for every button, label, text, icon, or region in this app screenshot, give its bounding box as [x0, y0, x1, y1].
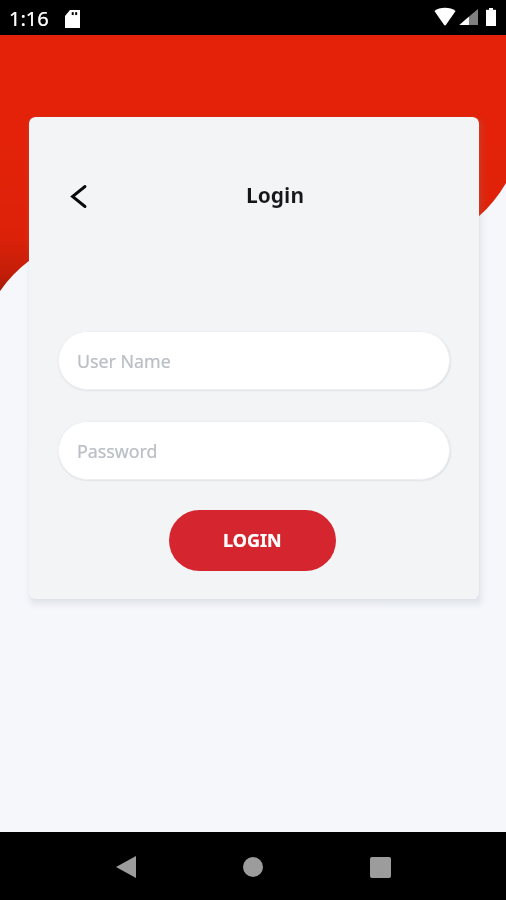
- staticText: LOGIN: [223, 528, 282, 553]
- staticText: 1:16: [9, 5, 49, 32]
- staticText: User Name: [77, 349, 171, 373]
- button[interactable]: LOGIN: [169, 510, 336, 571]
- button[interactable]: Password: [58, 421, 450, 480]
- staticText: Login: [244, 181, 306, 210]
- button[interactable]: Back: [96, 837, 156, 897]
- button[interactable]: Back: [55, 174, 100, 219]
- staticText: Password: [77, 439, 158, 463]
- button[interactable]: User Name: [58, 331, 450, 390]
- button[interactable]: Home: [223, 837, 283, 897]
- button[interactable]: Recents: [350, 837, 410, 897]
